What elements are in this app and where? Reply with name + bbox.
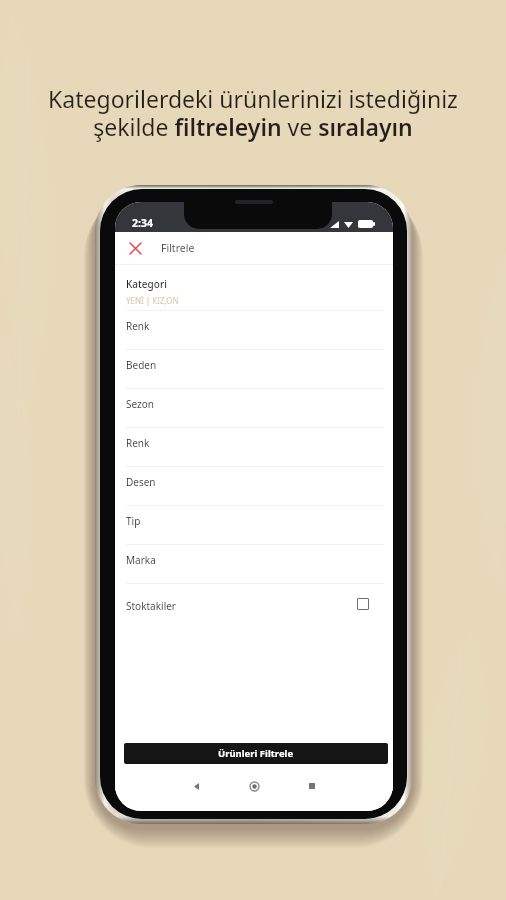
staticText: 2:34	[132, 216, 153, 230]
staticText: Tip	[126, 514, 141, 528]
button[interactable]: Kapat	[115, 232, 155, 264]
button[interactable]: Stoktakiler	[115, 584, 393, 632]
staticText: Marka	[126, 553, 156, 567]
staticText: Kategorilerdeki ürünlerinizi istediğiniz…	[48, 83, 458, 143]
staticText: YENİ | KIZ,ON	[126, 295, 179, 306]
button[interactable]: Son kullanılanlar	[300, 779, 324, 793]
staticText: Sezon	[126, 397, 154, 411]
button[interactable]: Renk	[115, 428, 393, 467]
button[interactable]: Beden	[115, 350, 393, 389]
button[interactable]: Geri	[184, 779, 208, 793]
staticText: Filtrele	[161, 241, 195, 255]
staticText: Renk	[126, 319, 150, 333]
staticText: Stoktakiler	[126, 599, 176, 613]
button[interactable]: Marka	[115, 545, 393, 584]
staticText: Ürünleri Filtrele	[218, 747, 294, 760]
button[interactable]: Sezon	[115, 389, 393, 428]
button[interactable]: Renk	[115, 311, 393, 350]
button[interactable]: Ürünleri Filtrele	[124, 743, 388, 764]
staticText: Desen	[126, 475, 156, 489]
staticText: Beden	[126, 358, 157, 372]
staticText: Kategori	[126, 277, 167, 291]
button[interactable]: Desen	[115, 467, 393, 506]
staticText: Renk	[126, 436, 150, 450]
button[interactable]: Tip	[115, 506, 393, 545]
button[interactable]: Ana sayfa	[242, 779, 266, 793]
button[interactable]: Kategori	[115, 265, 393, 310]
